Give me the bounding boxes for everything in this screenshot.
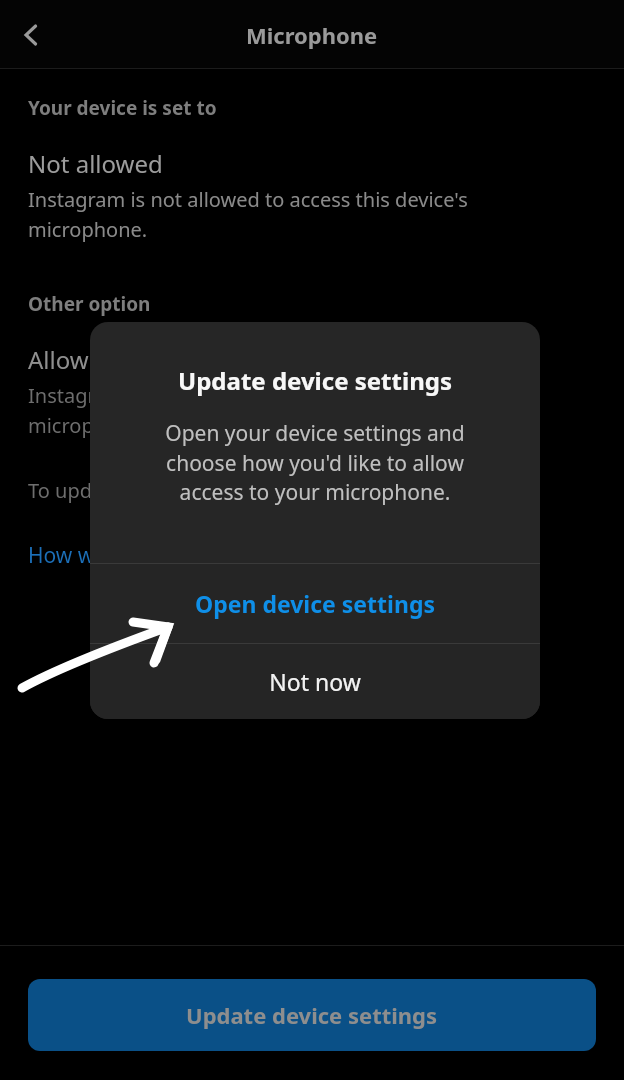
staticText: Instagram will be able to access this de… <box>28 382 444 439</box>
staticText: Microphone <box>246 20 378 50</box>
staticText: To update this, open your device setting… <box>28 477 418 504</box>
button[interactable]: How we use your data <box>28 541 247 570</box>
staticText: Other option <box>28 291 151 317</box>
button[interactable]: Not now <box>90 644 540 719</box>
staticText: Allow <box>28 343 89 376</box>
staticText: Instagram is not allowed to access this … <box>28 186 468 243</box>
staticText: Open device settings <box>195 588 435 619</box>
staticText: Update device settings <box>186 1000 438 1030</box>
staticText: Update device settings <box>178 364 452 397</box>
staticText: Your device is set to <box>28 95 217 121</box>
button[interactable]: Back <box>4 7 60 63</box>
button[interactable]: Open device settings <box>90 564 540 643</box>
staticText: How we use your data <box>28 541 247 570</box>
staticText: Not allowed <box>28 147 163 180</box>
staticText: Not now <box>269 666 361 697</box>
button[interactable]: Update device settings <box>28 979 596 1051</box>
staticText: Open your device settings and choose how… <box>165 419 465 506</box>
